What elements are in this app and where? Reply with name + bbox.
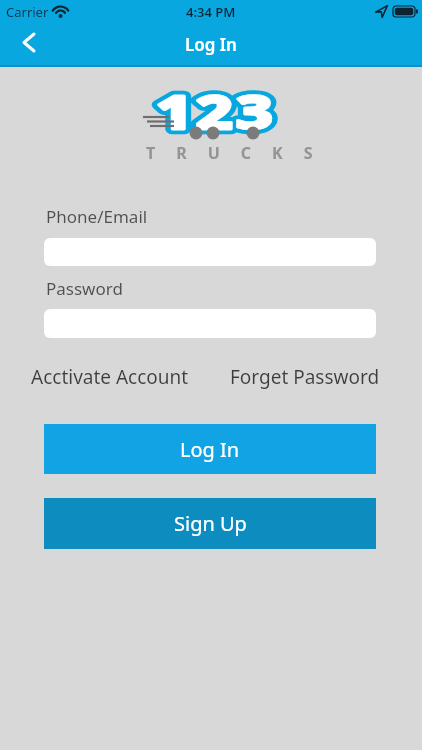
staticText: TRUCKS (146, 142, 334, 164)
button[interactable]: Log In (44, 424, 376, 474)
staticText: Log In (185, 33, 237, 56)
button[interactable] (10, 26, 46, 60)
staticText: 123 (156, 80, 276, 143)
button[interactable]: Acctivate Account (31, 364, 189, 390)
button[interactable]: Forget Password (230, 364, 380, 390)
staticText: Acctivate Account (31, 364, 189, 390)
staticText: Log In (180, 436, 240, 463)
button[interactable]: Sign Up (44, 498, 376, 549)
staticText: Carrier (6, 3, 49, 21)
staticText: 4:34 PM (186, 3, 236, 21)
staticText: Password (46, 277, 123, 300)
staticText: 123 (156, 80, 276, 143)
staticText: Sign Up (174, 510, 247, 537)
staticText: Forget Password (230, 364, 380, 390)
staticText: 123 (156, 80, 276, 143)
staticText: Phone/Email (46, 205, 148, 228)
